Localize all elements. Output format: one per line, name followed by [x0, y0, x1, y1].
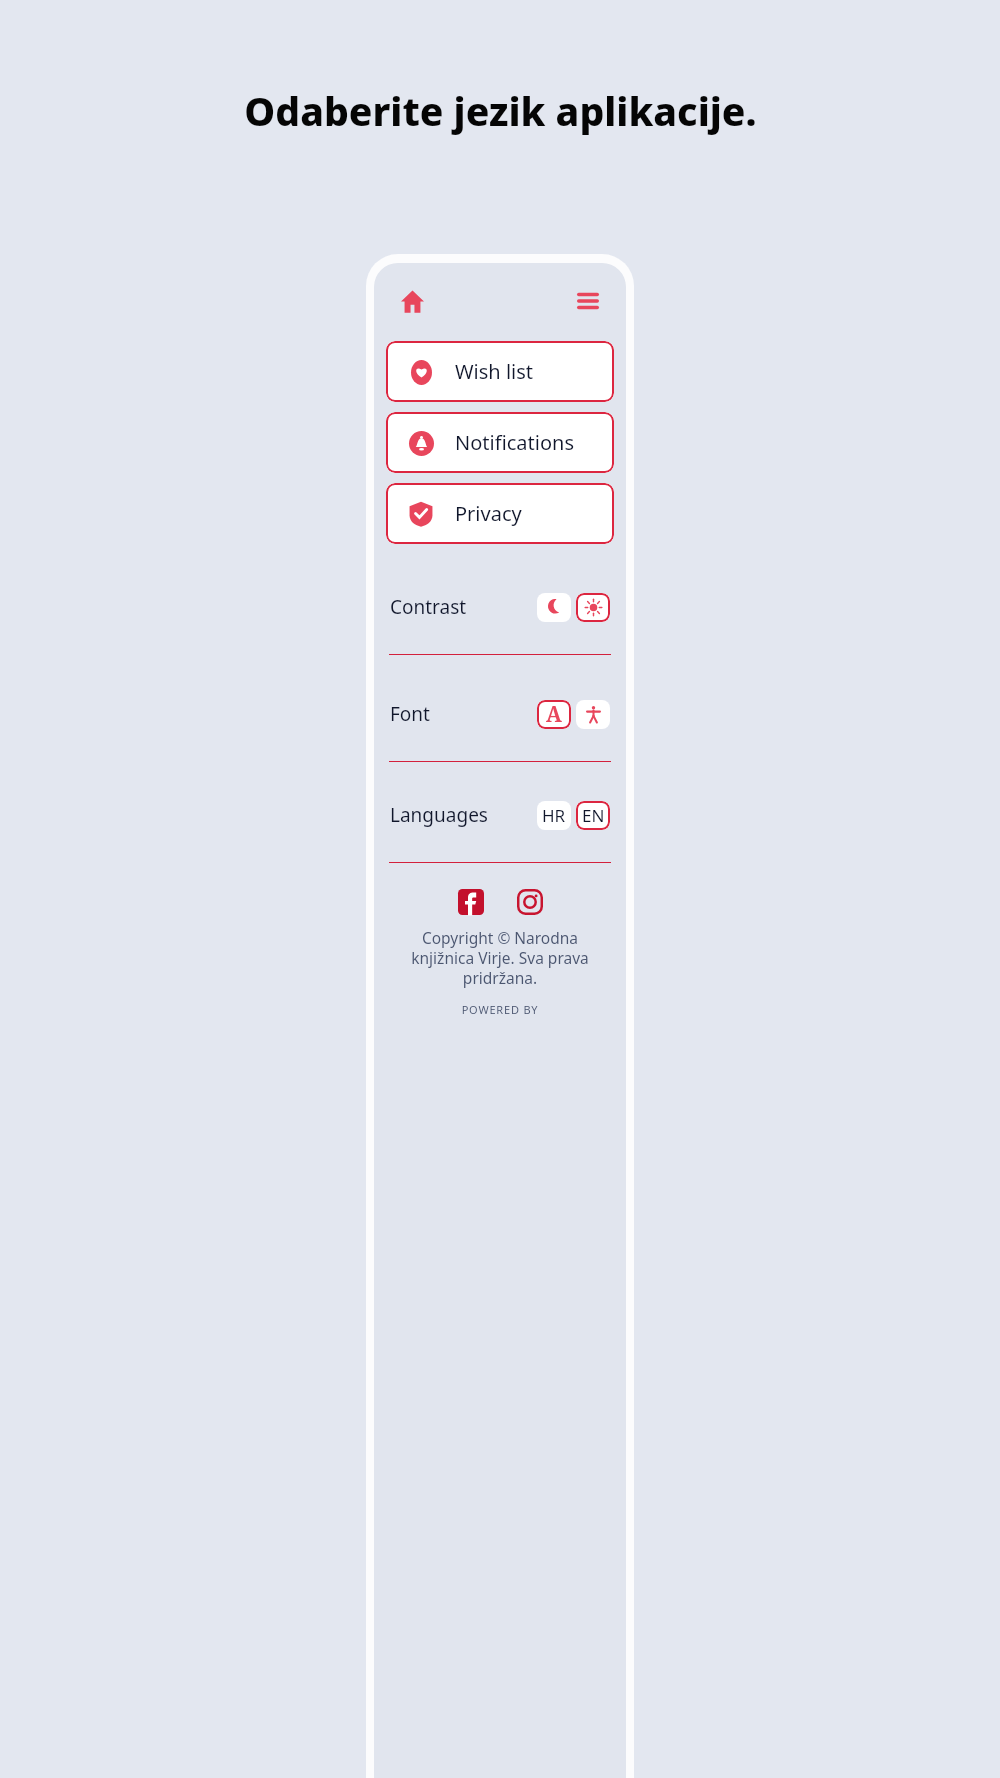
button[interactable]: Instagram	[509, 881, 551, 923]
staticText: Languages	[390, 802, 488, 828]
button[interactable]: Light mode	[576, 593, 610, 622]
staticText: Contrast	[390, 594, 467, 620]
staticText: Notifications	[455, 429, 574, 456]
button[interactable]: Dark mode	[537, 593, 571, 622]
button[interactable]: Privacy	[386, 483, 614, 544]
button[interactable]: Facebook	[450, 881, 492, 923]
button[interactable]: Accessibility	[576, 700, 610, 729]
button[interactable]: English	[576, 801, 610, 830]
staticText: Font	[390, 701, 430, 727]
staticText: Copyright © Narodna knjižnica Virje. Sva…	[396, 927, 604, 988]
staticText: Odaberite jezik aplikacije.	[244, 84, 757, 137]
staticText: HR	[542, 804, 566, 827]
staticText: Privacy	[455, 500, 522, 527]
button[interactable]: Menu	[570, 283, 606, 319]
staticText: POWERED BY	[374, 1002, 626, 1017]
button[interactable]: Home	[394, 283, 430, 319]
button[interactable]: Croatian	[537, 801, 571, 830]
staticText: A	[546, 700, 562, 729]
button[interactable]: Notifications	[386, 412, 614, 473]
staticText: Wish list	[455, 358, 534, 385]
button[interactable]: Serif font	[537, 700, 571, 729]
staticText: EN	[582, 804, 605, 827]
button[interactable]: Wish list	[386, 341, 614, 402]
